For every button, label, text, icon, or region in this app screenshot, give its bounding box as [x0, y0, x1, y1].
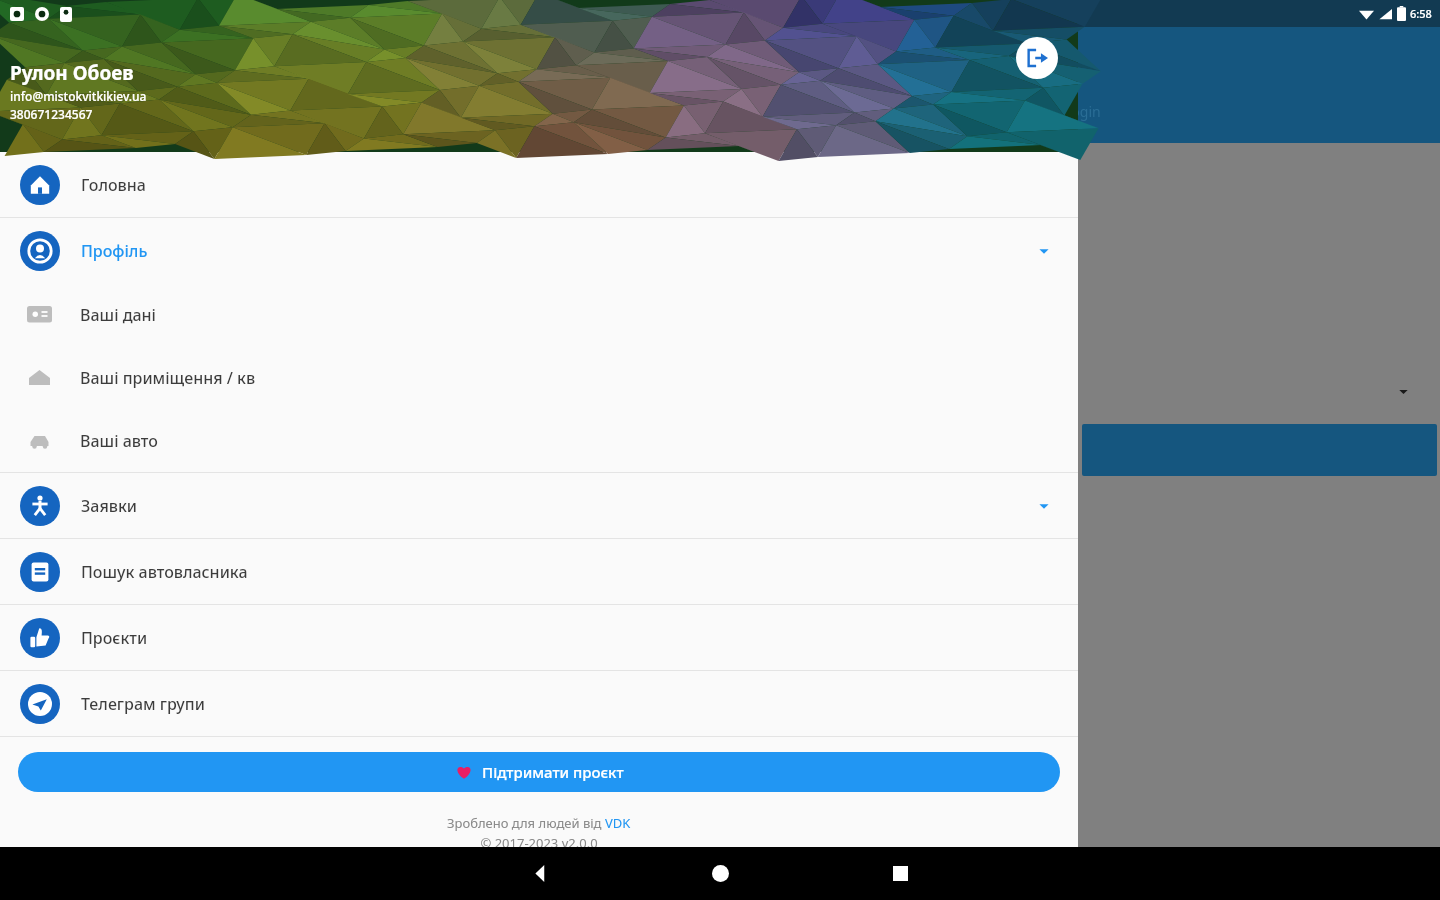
staticText: 6:58	[1410, 6, 1432, 21]
button[interactable]: Телеграм групи	[0, 671, 1078, 736]
staticText: Підтримати проєкт	[482, 762, 624, 782]
button[interactable]: Ваші приміщення / кв	[0, 346, 1078, 409]
staticText: Телеграм групи	[81, 693, 205, 715]
button[interactable]: Ваші авто	[0, 409, 1078, 472]
button[interactable]: Recents	[792, 847, 1008, 900]
button[interactable]: VDK	[605, 814, 631, 832]
staticText: Рулон Обоев	[10, 60, 134, 86]
staticText: Заявки	[81, 495, 138, 517]
staticText: 380671234567	[10, 106, 93, 122]
button[interactable]: Back	[432, 847, 648, 900]
button[interactable]: Пошук автовласника	[0, 539, 1078, 604]
button[interactable]: Logout	[1016, 37, 1058, 79]
button[interactable]: Заявки	[0, 473, 1078, 538]
button[interactable]: Підтримати проєкт	[18, 752, 1060, 792]
button[interactable]: Проєкти	[0, 605, 1078, 670]
staticText: Ваші приміщення / кв	[80, 367, 256, 389]
button[interactable]: Головна	[0, 152, 1078, 217]
staticText: Головна	[81, 174, 146, 196]
staticText: Login	[1064, 102, 1101, 121]
staticText: Ваші дані	[80, 304, 156, 326]
staticText: Проєкти	[81, 627, 148, 649]
button[interactable]: Home	[648, 847, 792, 900]
button[interactable]: Профіль	[0, 218, 1078, 283]
staticText: Профіль	[81, 240, 148, 262]
button[interactable]: Ваші дані	[0, 283, 1078, 346]
staticText: Зроблено для людей від	[447, 814, 605, 832]
staticText: © 2017-2023 v2.0.0	[0, 834, 1078, 847]
staticText: Пошук автовласника	[81, 561, 248, 583]
staticText: Ваші авто	[80, 430, 158, 452]
staticText: info@mistokvitkikiev.ua	[10, 88, 147, 104]
